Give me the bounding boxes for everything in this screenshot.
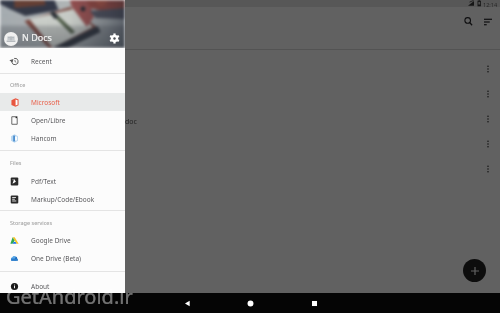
button[interactable]: Notes: [0, 156, 500, 181]
button[interactable]: More options: [480, 136, 496, 152]
staticText: Files: [10, 159, 22, 166]
button[interactable]: Markup/Code/Ebook: [0, 190, 125, 208]
staticText: doc: [125, 117, 137, 127]
staticText: GetAndroid.ir: [6, 283, 133, 310]
button[interactable]: Report: [0, 56, 500, 81]
button[interactable]: Search: [461, 14, 476, 29]
staticText: Pdf/Text: [31, 177, 57, 186]
button[interactable]: Contract: [0, 106, 500, 131]
button[interactable]: Pdf/Text: [0, 172, 125, 190]
staticText: About: [31, 282, 50, 291]
button[interactable]: Open/Libre: [0, 111, 125, 129]
button[interactable]: Home: [240, 293, 261, 313]
button[interactable]: More options: [480, 86, 496, 102]
staticText: Report: [36, 64, 59, 74]
button[interactable]: Recent: [0, 52, 125, 70]
staticText: Office: [10, 81, 26, 88]
staticText: N Docs: [22, 31, 52, 43]
staticText: Hancom: [31, 134, 57, 143]
button[interactable]: Hancom: [0, 129, 125, 147]
staticText: 12:14: [483, 1, 498, 8]
button[interactable]: More options: [480, 161, 496, 177]
button[interactable]: Settings: [107, 32, 121, 44]
button[interactable]: Sort: [480, 14, 495, 29]
button[interactable]: Google Drive: [0, 231, 125, 249]
staticText: Contract: [36, 114, 65, 124]
staticText: One Drive (Beta): [31, 254, 81, 263]
staticText: Summary: [36, 89, 68, 99]
button[interactable]: Microsoft: [0, 93, 125, 111]
button[interactable]: One Drive (Beta): [0, 249, 125, 267]
button[interactable]: Add: [463, 259, 486, 282]
staticText: Invoice: [36, 139, 60, 149]
button[interactable]: More options: [480, 61, 496, 77]
staticText: Open/Libre: [31, 116, 66, 125]
staticText: Google Drive: [31, 236, 71, 245]
button[interactable]: Summary: [0, 81, 500, 106]
staticText: Microsoft: [31, 98, 60, 107]
button[interactable]: More options: [480, 111, 496, 127]
button[interactable]: Recents: [304, 293, 325, 313]
button[interactable]: About: [0, 277, 125, 295]
button[interactable]: Invoice: [0, 131, 500, 156]
staticText: Storage services: [10, 219, 53, 226]
staticText: Recent: [31, 57, 52, 66]
button[interactable]: Back: [177, 293, 198, 313]
staticText: Markup/Code/Ebook: [31, 195, 95, 204]
